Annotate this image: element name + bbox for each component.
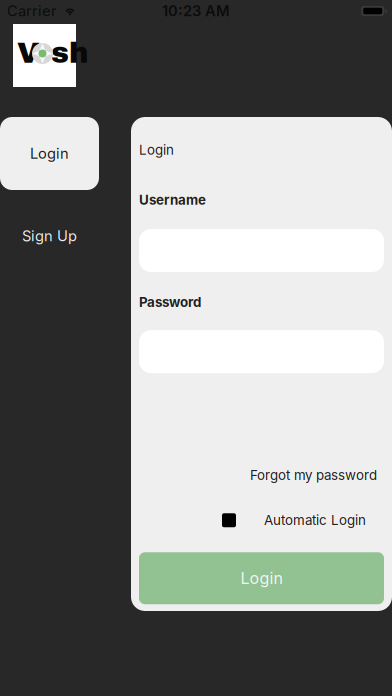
staticText: Login: [240, 569, 282, 588]
staticText: Username: [139, 192, 206, 208]
staticText: 10:23 AM: [162, 2, 230, 20]
staticText: Carrier: [7, 2, 57, 20]
button[interactable]: Automatic Login: [139, 483, 384, 528]
staticText: sh: [51, 37, 89, 69]
staticText: Password: [139, 294, 201, 310]
staticText: Automatic Login: [264, 512, 366, 528]
button[interactable]: Login: [139, 528, 384, 604]
staticText: Login: [139, 142, 174, 158]
button[interactable]: Sign Up: [0, 210, 99, 262]
staticText: Login: [30, 145, 69, 162]
staticText: Forgot my password: [250, 467, 377, 483]
staticText: Sign Up: [22, 227, 77, 245]
button[interactable]: Login: [0, 117, 99, 190]
staticText: V: [17, 37, 40, 69]
button[interactable]: Forgot my password: [139, 373, 384, 483]
